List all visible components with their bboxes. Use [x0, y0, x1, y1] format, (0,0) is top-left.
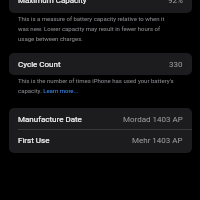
staticText: Manufacture Date: [18, 115, 82, 124]
staticText: Mordad 1403 AP: [123, 115, 183, 124]
button[interactable]: Maximum Capacity: [9, 0, 192, 7]
staticText: First Use: [18, 136, 50, 145]
staticText: Maximum Capacity: [18, 0, 87, 5]
button[interactable]: Cycle Count: [9, 53, 192, 75]
staticText: 330: [169, 60, 183, 69]
button[interactable]: First Use: [9, 129, 192, 151]
staticText: This is the number of times iPhone has u…: [18, 77, 176, 94]
button[interactable]: Manufacture Date: [9, 108, 192, 130]
staticText: This is a measure of battery capacity re…: [18, 15, 176, 42]
staticText: Mehr 1403 AP: [132, 136, 183, 145]
staticText: 92%: [168, 0, 183, 5]
staticText: Cycle Count: [18, 60, 61, 69]
